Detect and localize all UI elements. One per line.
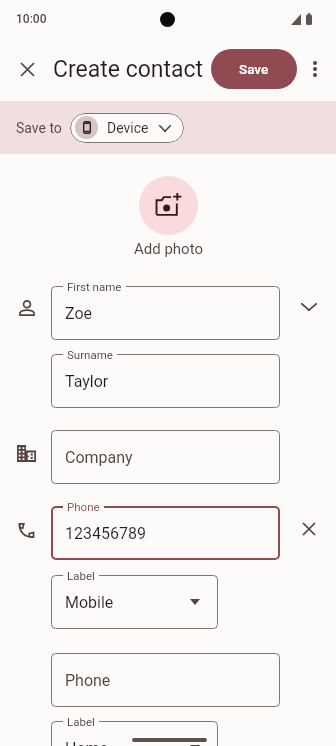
- button[interactable]: Device: [70, 113, 184, 143]
- staticText: Device: [107, 120, 149, 136]
- staticText: Home: [65, 739, 109, 746]
- button[interactable]: Label: [51, 575, 218, 629]
- button[interactable]: First name: [51, 286, 280, 340]
- button[interactable]: Clear phone: [292, 512, 326, 546]
- button[interactable]: Phone: [51, 653, 280, 707]
- button[interactable]: Label: [51, 721, 218, 746]
- staticText: Label: [67, 715, 95, 728]
- staticText: Mobile: [65, 593, 114, 612]
- button[interactable]: Add photo: [139, 176, 198, 235]
- staticText: Save to: [16, 120, 62, 136]
- staticText: Phone: [67, 500, 100, 513]
- button[interactable]: Surname: [51, 354, 280, 408]
- staticText: 10:00: [16, 12, 47, 26]
- button[interactable]: Expand name fields: [288, 286, 329, 327]
- staticText: Save: [239, 61, 269, 77]
- staticText: Zoe: [65, 304, 93, 323]
- button[interactable]: More options: [297, 51, 333, 87]
- staticText: Create contact: [53, 56, 204, 83]
- button[interactable]: Save: [211, 49, 297, 89]
- staticText: Add photo: [134, 240, 203, 258]
- button[interactable]: Company: [51, 430, 280, 484]
- staticText: 123456789: [65, 524, 146, 543]
- staticText: Phone: [65, 671, 111, 690]
- button[interactable]: Phone: [51, 506, 280, 560]
- button[interactable]: Close: [7, 49, 47, 89]
- staticText: Surname: [67, 348, 113, 361]
- staticText: Company: [65, 448, 133, 467]
- staticText: Label: [67, 569, 95, 582]
- staticText: Taylor: [65, 372, 109, 391]
- staticText: First name: [67, 280, 122, 293]
